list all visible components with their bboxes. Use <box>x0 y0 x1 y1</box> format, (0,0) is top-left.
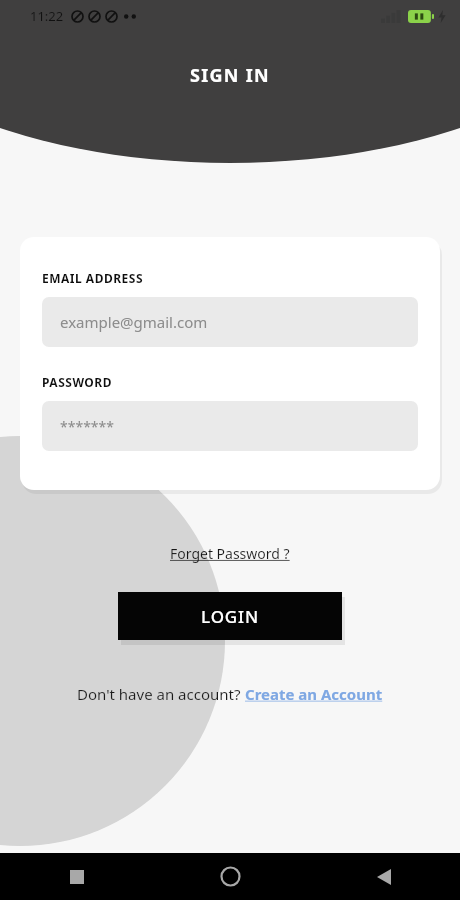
button[interactable]: ******* <box>42 401 418 451</box>
staticText: 11:22 <box>30 7 64 25</box>
button[interactable]: LOGIN <box>118 592 342 640</box>
button[interactable]: Recent apps <box>0 853 154 900</box>
button[interactable]: Create an Account <box>245 682 383 706</box>
staticText: ******* <box>60 417 114 436</box>
button[interactable]: example@gmail.com <box>42 297 418 347</box>
staticText: EMAIL ADDRESS <box>42 270 144 286</box>
staticText: Create an Account <box>245 684 383 704</box>
staticText: example@gmail.com <box>60 312 208 332</box>
staticText: Forget Password ? <box>170 544 290 563</box>
button[interactable]: Back <box>307 853 460 900</box>
staticText: SIGN IN <box>190 63 271 88</box>
button[interactable]: Forget Password ? <box>162 542 298 565</box>
staticText: PASSWORD <box>42 374 113 390</box>
staticText: LOGIN <box>201 605 260 628</box>
button[interactable]: Home <box>154 853 307 900</box>
staticText: Don't have an account? <box>77 684 245 704</box>
